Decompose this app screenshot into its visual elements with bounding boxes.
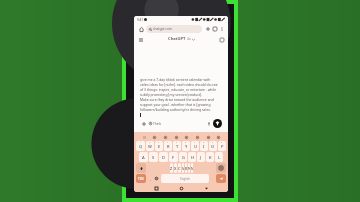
staticText: , [150, 176, 151, 181]
staticText: E [158, 144, 161, 149]
button[interactable]: J [197, 152, 205, 162]
button[interactable]: Keyboard tool 5 [194, 134, 200, 140]
staticText: ChatGPT [168, 36, 186, 42]
staticText: English [180, 177, 190, 181]
button[interactable]: ChatGPT [144, 36, 218, 42]
staticText: ?123 [138, 177, 144, 181]
button[interactable]: 0 [218, 141, 226, 151]
staticText: 7 [194, 141, 196, 144]
staticText: I [203, 144, 205, 149]
button[interactable]: 2 [146, 141, 154, 151]
button[interactable]: L [215, 152, 223, 162]
button[interactable]: 4 [164, 141, 172, 151]
button[interactable]: Back [203, 185, 209, 191]
button[interactable]: chatgpt.com [146, 25, 202, 33]
staticText: 0 [221, 141, 223, 144]
button[interactable]: Recents [153, 185, 159, 191]
staticText: 9:41 [137, 18, 143, 22]
button[interactable]: 5 [173, 141, 181, 151]
button[interactable]: V [182, 163, 184, 173]
button[interactable]: C [178, 163, 181, 173]
button[interactable]: 6 [182, 141, 190, 151]
button[interactable]: S [149, 152, 158, 162]
staticText: P [221, 144, 224, 149]
staticText: N [188, 166, 190, 171]
button[interactable]: K [206, 152, 214, 162]
staticText: give me a 7-day tiktok content calendar … [140, 77, 211, 82]
button[interactable]: Keyboard tool 2 [162, 134, 168, 140]
staticText: V [182, 166, 184, 171]
button[interactable]: . [210, 174, 215, 183]
button[interactable]: Z [170, 163, 173, 173]
button[interactable]: 3 [155, 141, 163, 151]
button[interactable]: Think [147, 120, 164, 127]
button[interactable]: 8 [200, 141, 208, 151]
button[interactable]: Home [137, 25, 145, 33]
staticText: S [152, 155, 155, 160]
staticText: 4 [167, 141, 169, 144]
staticText: L [218, 155, 221, 160]
staticText: C [178, 166, 181, 171]
button[interactable]: Modifier key [136, 163, 146, 173]
button[interactable]: Keyboard tool 7 [215, 134, 221, 140]
button[interactable]: ?123 [136, 174, 146, 183]
button[interactable]: Voice input [205, 120, 212, 127]
button[interactable]: Enter [216, 174, 226, 183]
button[interactable]: 1 [136, 141, 145, 151]
button[interactable]: A [139, 152, 148, 162]
button[interactable]: New chat [218, 36, 225, 43]
staticText: U [194, 144, 197, 149]
button[interactable]: Keyboard tool 1 [151, 134, 157, 140]
staticText: 6 [185, 141, 187, 144]
staticText: 3 [158, 141, 160, 144]
staticText: . [212, 176, 213, 181]
button[interactable]: Home [178, 185, 184, 191]
button[interactable]: G [179, 152, 187, 162]
staticText: F [172, 155, 175, 160]
button[interactable]: New tab [204, 25, 211, 32]
staticText: 2 [149, 141, 151, 144]
button[interactable]: X [174, 163, 177, 173]
staticText: G [182, 155, 185, 160]
staticText: subtly promoting [my service/product]. [140, 92, 203, 97]
staticText: Make sure they drive toward the audience… [140, 97, 214, 102]
button[interactable]: give me a 7-day tiktok content calendar … [137, 75, 225, 130]
button[interactable]: N [188, 163, 190, 173]
button[interactable]: Emoji [153, 174, 160, 183]
button[interactable]: F [169, 152, 178, 162]
staticText: Z [170, 166, 173, 171]
staticText: R [167, 144, 170, 149]
staticText: of 3 things: inspire, educate, or entert… [140, 87, 217, 92]
staticText: 4o [187, 37, 191, 41]
button[interactable]: More options [218, 25, 225, 32]
button[interactable]: , [147, 174, 153, 183]
staticText: M [191, 166, 193, 171]
button[interactable]: Tabs [211, 25, 218, 32]
button[interactable]: Keyboard tool 6 [205, 134, 211, 140]
button[interactable]: Menu [137, 36, 144, 43]
button[interactable]: Modifier key [216, 163, 226, 173]
staticText: H [191, 155, 194, 160]
staticText: chatgpt.com [153, 27, 172, 31]
button[interactable]: B [185, 163, 187, 173]
staticText: followers/building authority/or driving … [140, 107, 211, 112]
button[interactable]: Keyboard tool 3 [173, 134, 179, 140]
staticText: video ideas for [niche]. each video shou… [140, 82, 218, 87]
staticText: Q [139, 144, 143, 149]
staticText: O [211, 144, 215, 149]
button[interactable]: D [159, 152, 168, 162]
button[interactable]: 7 [191, 141, 199, 151]
button[interactable]: Attach [140, 120, 147, 127]
button[interactable]: 9 [209, 141, 217, 151]
button[interactable]: Keyboard tool 4 [183, 134, 189, 140]
staticText: W [148, 144, 152, 149]
button[interactable]: H [188, 152, 196, 162]
staticText: A [142, 155, 145, 160]
button[interactable]: Keyboard tool 0 [141, 134, 147, 140]
button[interactable]: English [161, 174, 209, 183]
button[interactable]: M [191, 163, 193, 173]
staticText: Think [153, 122, 162, 126]
button[interactable]: Send [213, 119, 222, 128]
staticText: T [176, 144, 179, 149]
staticText: 5 [176, 141, 178, 144]
